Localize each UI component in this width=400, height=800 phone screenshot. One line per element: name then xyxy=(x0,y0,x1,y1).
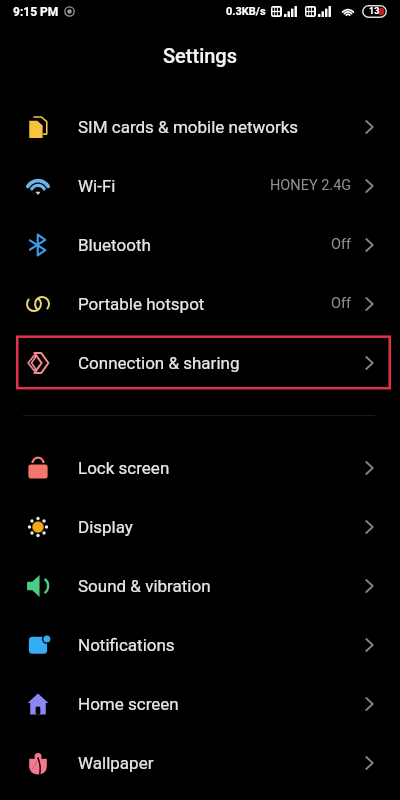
staticText: Settings xyxy=(163,44,238,67)
staticText: Bluetooth xyxy=(78,235,151,255)
staticText: Sound & vibration xyxy=(78,576,211,596)
button[interactable]: Bluetooth xyxy=(0,215,400,274)
staticText: 13 xyxy=(369,6,380,17)
staticText: Portable hotspot xyxy=(78,294,205,314)
staticText: SIM cards & mobile networks xyxy=(78,117,299,137)
staticText: Lock screen xyxy=(78,458,170,478)
staticText: 0.3KB/s xyxy=(226,5,266,18)
button[interactable]: SIM cards & mobile networks xyxy=(0,97,400,156)
staticText: Connection & sharing xyxy=(78,353,240,373)
button[interactable]: Wi-Fi xyxy=(0,156,400,215)
button[interactable]: Display xyxy=(0,497,400,556)
staticText: Off xyxy=(331,295,352,312)
staticText: Home screen xyxy=(78,694,179,714)
button[interactable]: Home screen xyxy=(0,674,400,733)
button[interactable]: Notifications xyxy=(0,615,400,674)
staticText: Notifications xyxy=(78,635,175,655)
button[interactable]: Lock screen xyxy=(0,438,400,497)
staticText: Wi-Fi xyxy=(78,176,116,196)
button[interactable]: Sound & vibration xyxy=(0,556,400,615)
staticText: Display xyxy=(78,517,133,537)
button[interactable]: Wallpaper xyxy=(0,733,400,792)
staticText: Wallpaper xyxy=(78,753,154,773)
staticText: Off xyxy=(331,236,352,253)
staticText: 9:15 PM xyxy=(13,5,59,19)
staticText: HONEY 2.4G xyxy=(270,177,352,194)
button[interactable]: Portable hotspot xyxy=(0,274,400,333)
button[interactable]: Connection & sharing xyxy=(0,333,400,392)
